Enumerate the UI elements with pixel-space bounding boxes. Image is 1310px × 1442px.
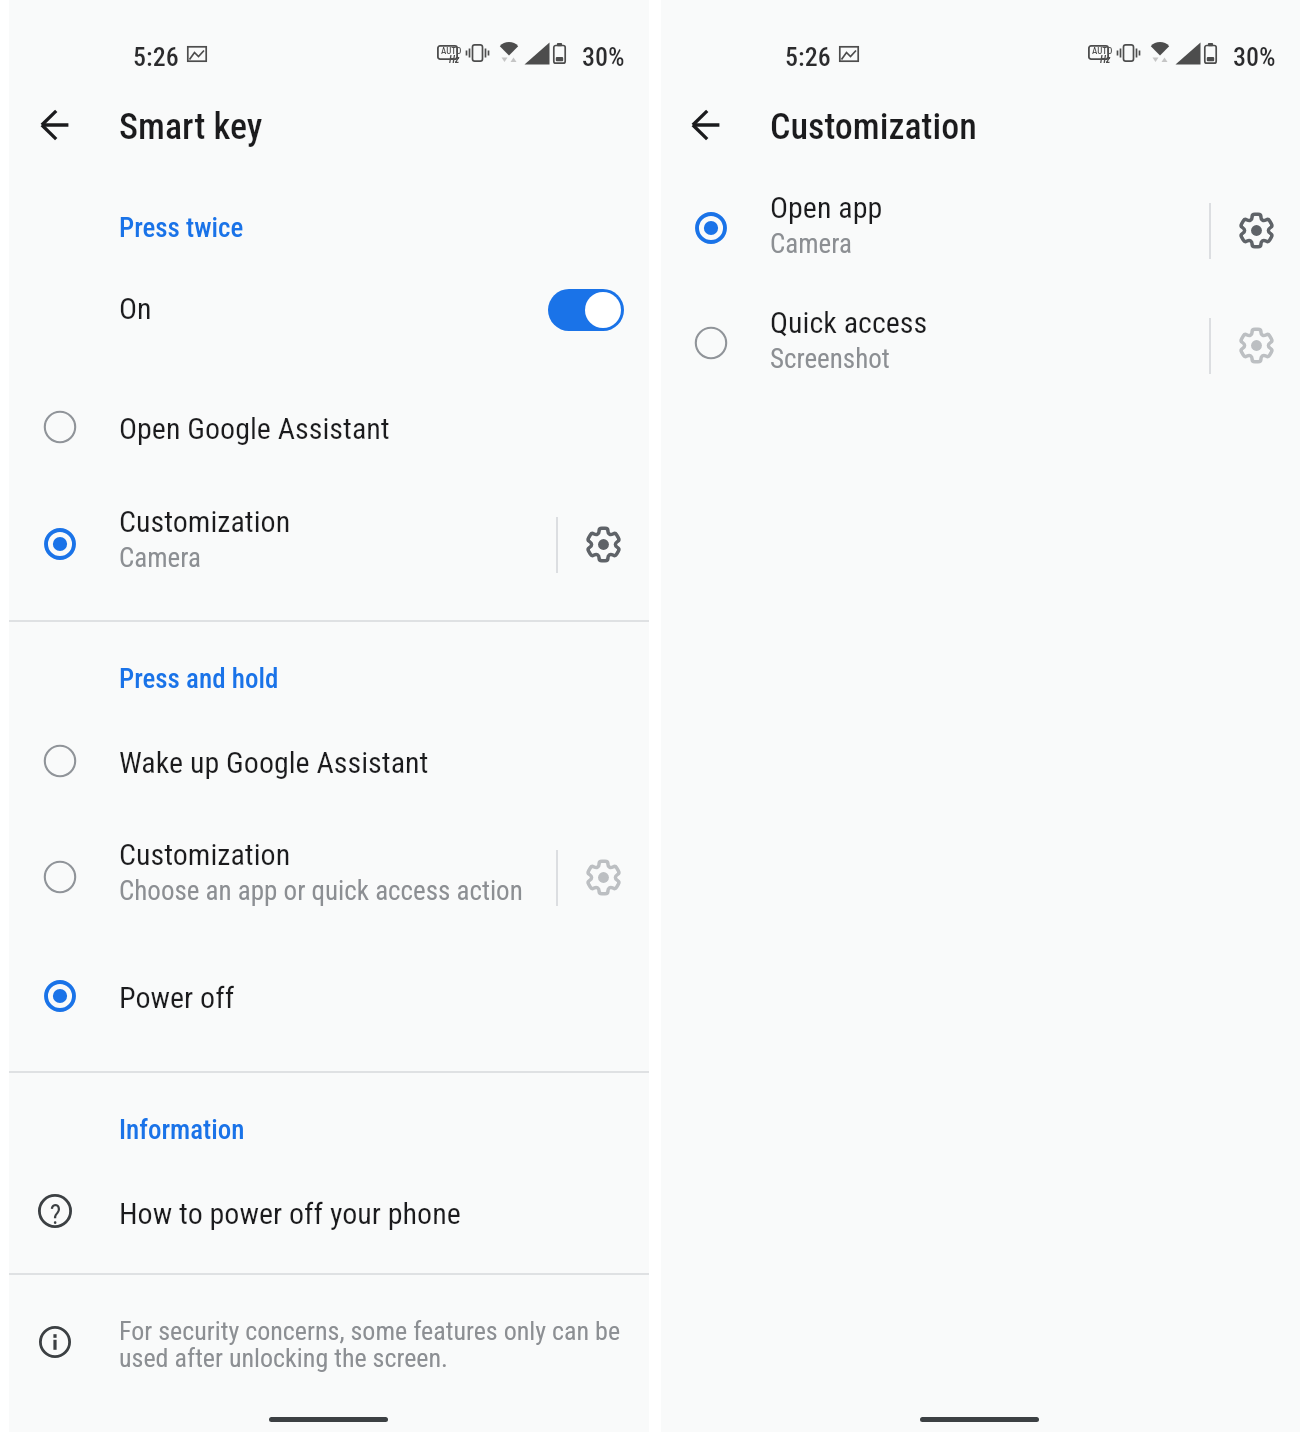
staticText: AUTO bbox=[441, 46, 462, 57]
staticText: ? bbox=[48, 1199, 63, 1231]
staticText: Hz bbox=[449, 54, 460, 66]
staticText: 5:26 bbox=[133, 42, 179, 72]
button[interactable]: Customization bbox=[9, 489, 649, 601]
button[interactable]: ? bbox=[9, 1168, 649, 1256]
button[interactable]: Open Google Assistant bbox=[9, 383, 649, 471]
button[interactable]: Back bbox=[26, 96, 84, 154]
staticText: Press and hold bbox=[119, 663, 279, 695]
button[interactable]: Wake up Google Assistant bbox=[9, 717, 649, 805]
button[interactable]: Settings bbox=[1218, 307, 1294, 383]
button[interactable]: Settings bbox=[565, 506, 641, 582]
button[interactable]: On bbox=[548, 289, 624, 331]
staticText: Camera bbox=[770, 228, 852, 260]
staticText: On bbox=[119, 291, 152, 326]
button[interactable]: Settings bbox=[1218, 192, 1294, 268]
button[interactable]: Quick access bbox=[661, 290, 1300, 402]
button[interactable]: Settings bbox=[565, 839, 641, 915]
staticText: Choose an app or quick access action bbox=[119, 875, 523, 907]
button[interactable]: Customization bbox=[9, 822, 649, 934]
staticText: Customization bbox=[119, 837, 291, 872]
staticText: Hz bbox=[1100, 54, 1111, 66]
staticText: AUTO bbox=[1092, 46, 1113, 57]
staticText: used after unlocking the screen. bbox=[119, 1343, 448, 1373]
button[interactable]: Open app bbox=[661, 175, 1300, 287]
button[interactable]: Back bbox=[677, 96, 735, 154]
staticText: Power off bbox=[119, 980, 235, 1015]
staticText: Camera bbox=[119, 542, 201, 574]
staticText: Customization bbox=[119, 504, 291, 539]
staticText: Wake up Google Assistant bbox=[119, 745, 429, 780]
button[interactable]: On bbox=[9, 266, 649, 354]
staticText: For security concerns, some features onl… bbox=[119, 1316, 621, 1346]
staticText: 5:26 bbox=[785, 42, 831, 72]
staticText: Customization bbox=[770, 106, 977, 148]
staticText: Quick access bbox=[770, 305, 928, 340]
staticText: 30% bbox=[582, 42, 625, 72]
staticText: How to power off your phone bbox=[119, 1196, 461, 1231]
staticText: Smart key bbox=[119, 106, 263, 148]
staticText: Screenshot bbox=[770, 343, 890, 375]
staticText: Information bbox=[119, 1114, 245, 1146]
staticText: Press twice bbox=[119, 212, 244, 244]
button[interactable]: Power off bbox=[9, 952, 649, 1040]
staticText: 30% bbox=[1233, 42, 1276, 72]
staticText: Open app bbox=[770, 190, 883, 225]
staticText: Open Google Assistant bbox=[119, 411, 390, 446]
